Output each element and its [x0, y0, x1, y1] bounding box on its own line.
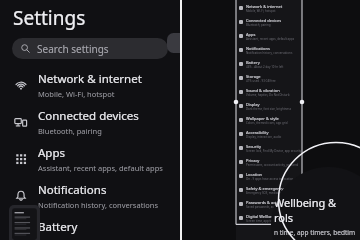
staticText: Apps [246, 32, 256, 37]
staticText: Screen time, app timers, bedtime [246, 219, 292, 223]
staticText: Mobile, Wi-Fi, hotspot [38, 89, 115, 99]
button[interactable]: Security [236, 141, 302, 155]
staticText: Colors, themed icons, app grid [246, 121, 288, 125]
button[interactable]: Apps [4, 140, 172, 177]
button[interactable]: Network & internet [236, 1, 302, 15]
staticText: Bluetooth, pairing [246, 23, 271, 27]
button[interactable]: Display [236, 99, 302, 113]
staticText: Privacy [246, 158, 260, 163]
button[interactable]: Storage [236, 71, 302, 85]
staticText: Safety & emergency [246, 186, 284, 191]
button[interactable]: Screen preview [9, 205, 40, 240]
button[interactable]: Search settings [12, 38, 168, 59]
button[interactable]: Apps [236, 29, 302, 43]
staticText: Network & internet [38, 71, 142, 87]
staticText: Passwords & accounts [246, 200, 288, 205]
button[interactable]: Location [236, 169, 302, 183]
staticText: 41% used - 93 GB free [246, 79, 276, 83]
staticText: Display, interaction, audio [246, 135, 282, 139]
button[interactable]: Magnified preview [271, 167, 360, 240]
staticText: Search settings [37, 42, 109, 56]
button[interactable]: Sound & vibration [236, 85, 302, 99]
staticText: Notifications [38, 182, 107, 198]
staticText: 44% - About 2 day 10 hr left [246, 65, 284, 69]
staticText: On - 9 apps have access to location [246, 177, 294, 181]
button[interactable]: Accessibility [236, 127, 302, 141]
staticText: Connected devices [38, 108, 139, 124]
staticText: Location [246, 172, 263, 177]
button[interactable]: Battery [236, 57, 302, 71]
staticText: Settings [13, 5, 86, 31]
staticText: Permissions, account activity, personal … [246, 163, 302, 167]
button[interactable]: Notifications [4, 177, 172, 214]
staticText: n time, app timers, bedtim [274, 228, 355, 237]
staticText: Battery [38, 219, 78, 235]
button[interactable]: Network & internet [4, 66, 172, 103]
staticText: rols [274, 210, 294, 225]
staticText: Accessibility [246, 130, 269, 135]
staticText: Sound & vibration [246, 88, 280, 93]
button[interactable]: Safety & emergency [236, 183, 302, 197]
staticText: Assistant, recent apps, default apps [246, 37, 295, 41]
button[interactable]: Passwords & accounts [236, 197, 302, 211]
button[interactable]: Digital Wellbeing & controls [236, 211, 302, 225]
button[interactable]: Notifications [236, 43, 302, 57]
staticText: Notification history, conversations [246, 51, 293, 55]
staticText: Notification history, conversations [38, 200, 159, 210]
staticText: Notifications [246, 46, 270, 51]
staticText: Volume, haptics, Do Not Disturb [246, 93, 290, 97]
staticText: Wallpaper & style [246, 116, 279, 121]
staticText: Display [246, 102, 260, 107]
staticText: Digital Wellbeing & controls [246, 214, 299, 219]
staticText: Wellbeing & [274, 195, 337, 210]
staticText: Apps [38, 145, 66, 161]
button[interactable]: Battery [4, 214, 172, 240]
button[interactable]: Privacy [236, 155, 302, 169]
staticText: Screen lock, Find My Device, app securit… [246, 149, 302, 153]
button[interactable]: Connected devices [236, 15, 302, 29]
staticText: Battery [246, 60, 260, 65]
staticText: Connected devices [246, 18, 282, 23]
staticText: Storage [246, 74, 261, 79]
staticText: Bluetooth, pairing [38, 126, 102, 136]
staticText: Network & internet [246, 4, 283, 9]
button[interactable]: Wallpaper & style [236, 113, 302, 127]
staticText: Security [246, 144, 262, 149]
staticText: Assistant, recent apps, default apps [38, 163, 163, 173]
staticText: Mobile, Wi-Fi, hotspot [246, 9, 276, 13]
staticText: Saved passwords, autofill, accounts [246, 205, 294, 209]
staticText: Dark theme, font size, brightness [246, 107, 292, 111]
button[interactable]: Connected devices [4, 103, 172, 140]
staticText: Emergency SOS, medical info, alerts [246, 191, 295, 195]
